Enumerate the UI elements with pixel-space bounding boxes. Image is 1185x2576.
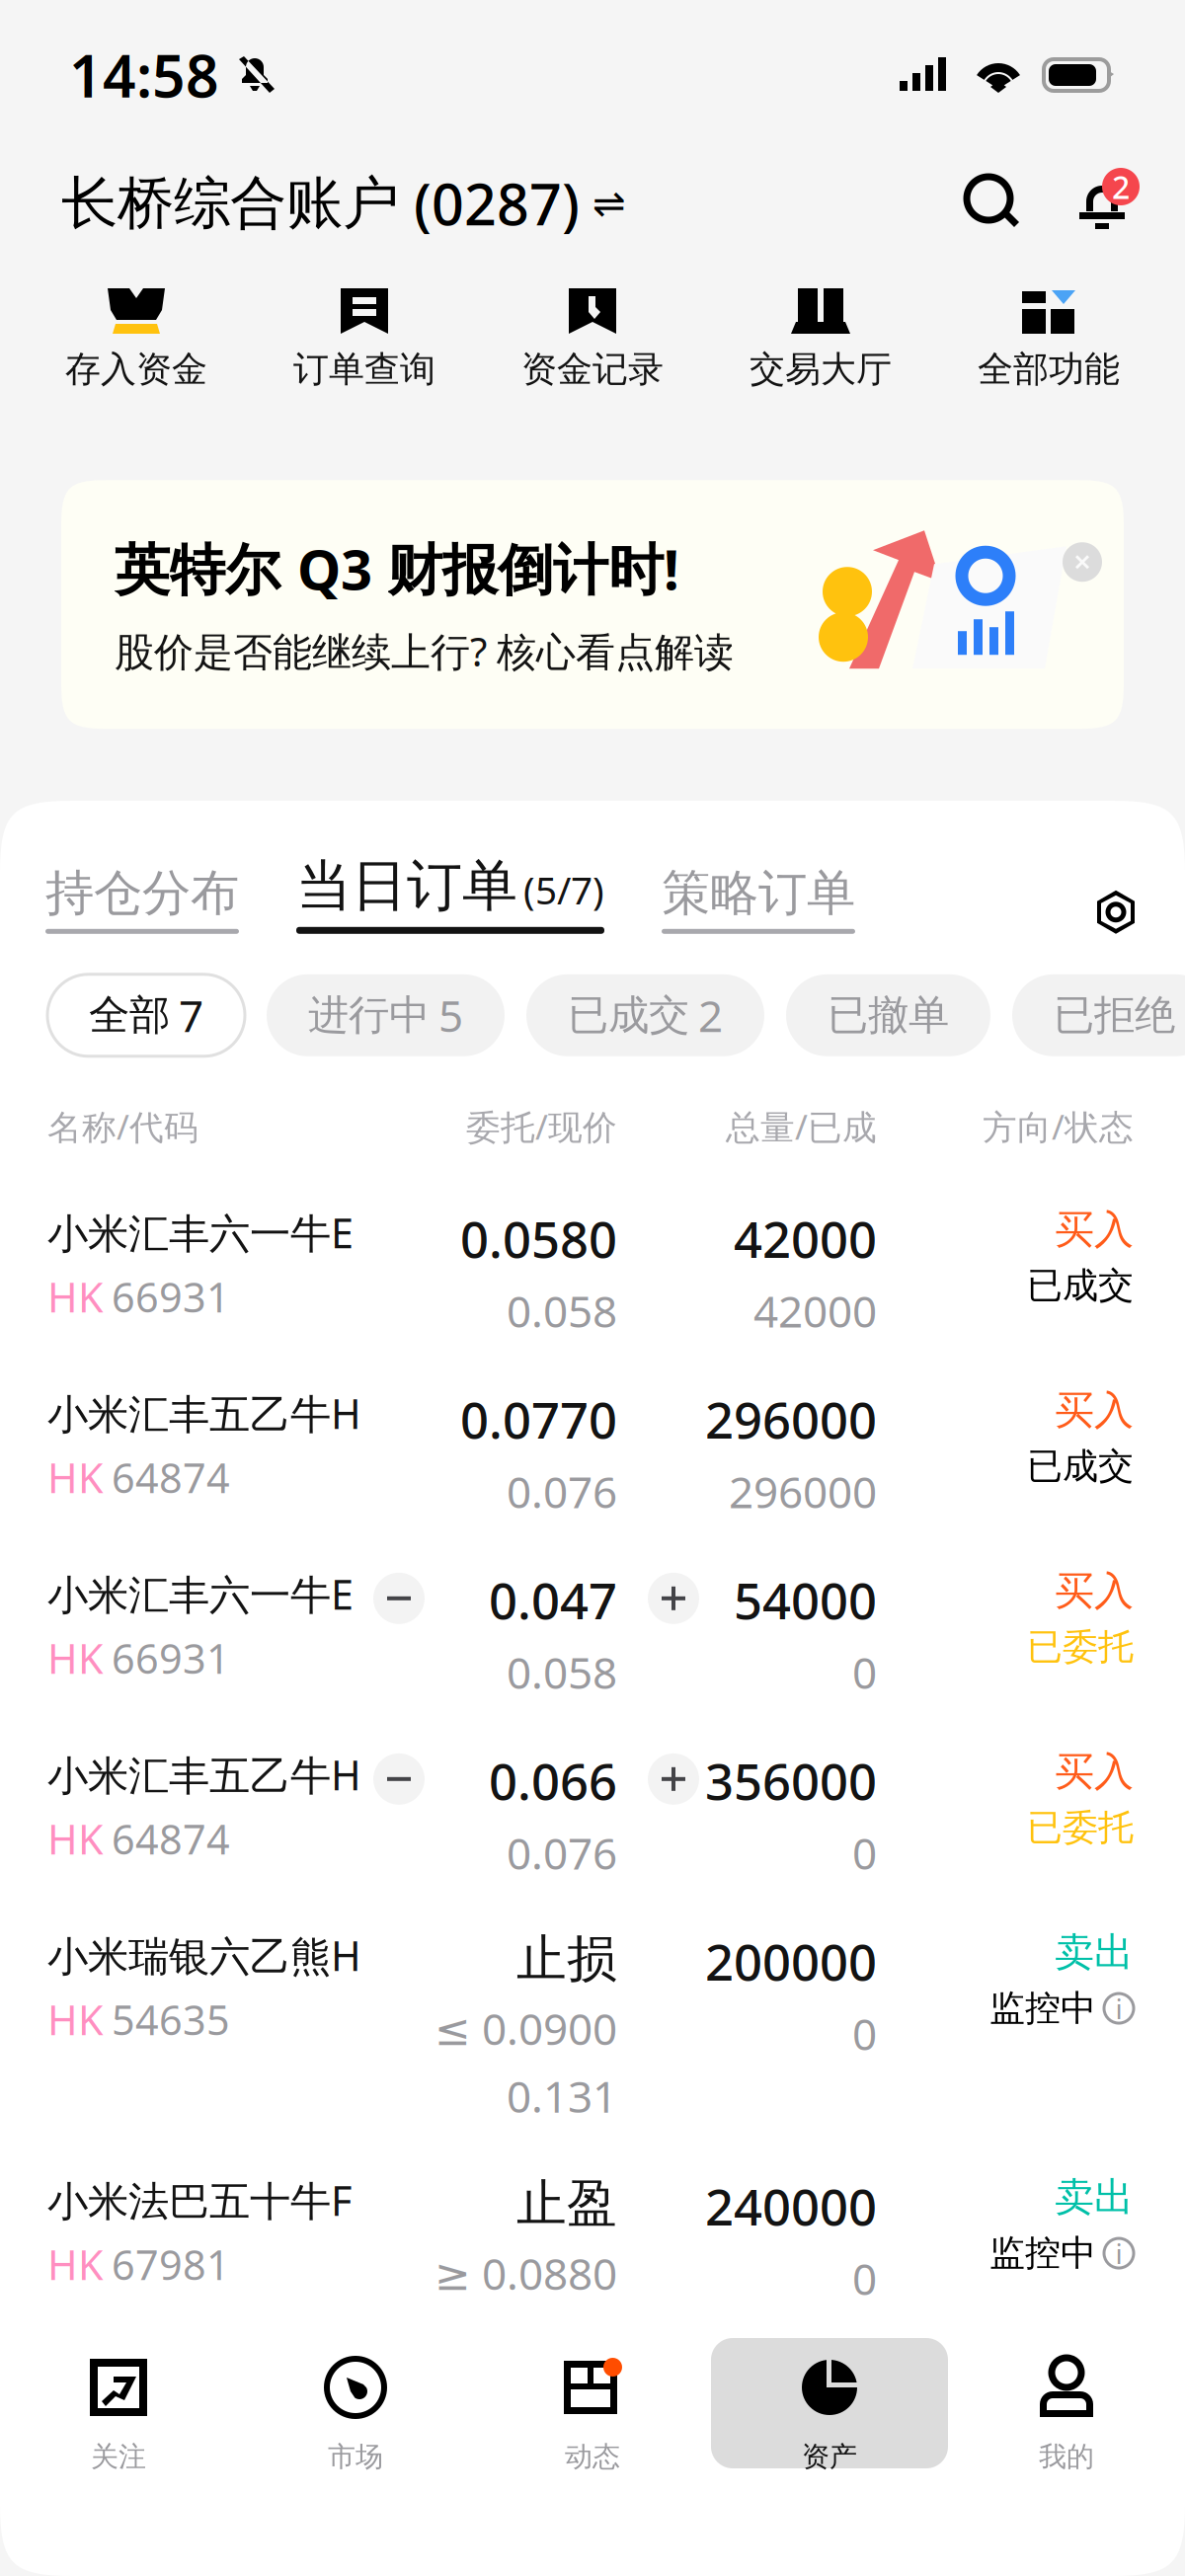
- button[interactable]: 小米汇丰六一牛E: [0, 1149, 1185, 1330]
- staticText: 存入资金: [65, 348, 207, 391]
- staticText: 小米汇丰六一牛E: [47, 1567, 354, 1621]
- staticText: (5/7): [523, 864, 604, 915]
- staticText: 0.076: [507, 1824, 617, 1881]
- staticText: HK: [47, 1269, 104, 1324]
- staticText: 订单查询: [293, 348, 435, 391]
- button[interactable]: 订单查询: [250, 288, 478, 391]
- button[interactable]: Search: [966, 176, 1021, 231]
- button[interactable]: 长桥综合账户: [61, 166, 626, 241]
- button[interactable]: 资金记录: [478, 288, 707, 391]
- staticText: 0.0770: [460, 1386, 617, 1452]
- staticText: 0.131: [507, 2067, 617, 2125]
- staticText: 已成交: [568, 990, 689, 1040]
- button[interactable]: Settings: [1096, 890, 1136, 934]
- button[interactable]: Decrease: [373, 1753, 425, 1805]
- staticText: 0.010: [507, 2312, 617, 2370]
- staticText: 股价是否能继续上行? 核心看点解读: [115, 625, 734, 677]
- staticText: 持仓分布: [45, 863, 239, 923]
- staticText: 名称/代码: [47, 1104, 198, 1149]
- staticText: 64874: [112, 1811, 230, 1866]
- button[interactable]: 持仓分布: [45, 863, 239, 934]
- staticText: 卖出: [1055, 1928, 1134, 1977]
- button[interactable]: 存入资金: [22, 288, 250, 391]
- button[interactable]: Decrease: [373, 1573, 425, 1624]
- staticText: 200000: [705, 1928, 877, 1995]
- staticText: 委托/现价: [466, 1104, 617, 1149]
- staticText: 买入: [1055, 1205, 1134, 1254]
- staticText: 0: [852, 1643, 877, 1701]
- staticText: 42000: [734, 1205, 877, 1272]
- staticText: 监控中: [989, 2231, 1096, 2275]
- button[interactable]: 交易大厅: [707, 288, 935, 391]
- staticText: 买入: [1055, 1567, 1134, 1615]
- button[interactable]: 当日订单: [296, 852, 604, 934]
- staticText: HK: [47, 1992, 104, 2046]
- staticText: ⇌: [580, 181, 626, 226]
- staticText: 总量/已成: [726, 1104, 877, 1149]
- button[interactable]: Notifications: [1076, 176, 1128, 231]
- staticText: 方向/状态: [983, 1104, 1134, 1149]
- button[interactable]: 市场: [237, 2338, 474, 2468]
- staticText: 64874: [112, 1450, 230, 1504]
- staticText: 小米法巴五十牛F: [47, 2173, 352, 2227]
- button[interactable]: 已拒绝: [1012, 974, 1185, 1056]
- button[interactable]: 动态: [474, 2338, 711, 2468]
- staticText: 296000: [705, 1386, 877, 1452]
- button[interactable]: 我的: [948, 2338, 1185, 2468]
- staticText: 进行中: [308, 990, 430, 1040]
- button[interactable]: 小米汇丰六一牛E: [0, 1510, 1185, 1691]
- staticText: 42000: [753, 1282, 877, 1339]
- staticText: i: [1115, 2235, 1122, 2272]
- staticText: HK: [47, 1631, 104, 1685]
- button[interactable]: 全部功能: [935, 288, 1163, 391]
- button[interactable]: 关注: [0, 2338, 237, 2468]
- staticText: i: [1115, 1990, 1122, 2027]
- staticText: 买入: [1055, 1386, 1134, 1435]
- staticText: 0: [852, 2004, 877, 2062]
- staticText: 66931: [112, 1631, 230, 1685]
- button[interactable]: 小米汇丰五乙牛H: [0, 1330, 1185, 1510]
- button[interactable]: 小米汇丰五乙牛H: [0, 1691, 1185, 1872]
- staticText: HK: [47, 1811, 104, 1866]
- button[interactable]: 资产: [711, 2338, 948, 2468]
- button[interactable]: 英特尔 Q3 财报倒计时!: [61, 480, 1124, 729]
- staticText: 长桥综合账户: [61, 169, 399, 238]
- staticText: 0.076: [507, 1462, 617, 1520]
- staticText: 策略订单: [662, 863, 855, 923]
- staticText: 0.058: [507, 1282, 617, 1339]
- staticText: 356000: [705, 1747, 877, 1814]
- button[interactable]: 策略订单: [662, 863, 855, 934]
- staticText: 买入: [1055, 1747, 1134, 1796]
- button[interactable]: 已成交: [526, 974, 764, 1056]
- staticText: 监控中: [989, 1987, 1096, 2030]
- button[interactable]: 进行中: [267, 974, 505, 1056]
- staticText: 卖出: [1055, 2173, 1134, 2221]
- staticText: HK: [47, 2237, 104, 2291]
- staticText: 54635: [112, 1992, 230, 2046]
- staticText: 交易大厅: [750, 348, 892, 391]
- staticText: 小米汇丰五乙牛H: [47, 1386, 361, 1440]
- staticText: 14:58: [69, 37, 219, 113]
- staticText: 已成交: [1027, 1264, 1134, 1307]
- button[interactable]: Increase: [648, 1753, 699, 1805]
- button[interactable]: Increase: [648, 1573, 699, 1624]
- staticText: 全部功能: [978, 348, 1120, 391]
- staticText: ≤ 0.0900: [434, 1999, 617, 2057]
- staticText: 当日订单: [296, 852, 517, 920]
- staticText: 已委托: [1027, 1806, 1134, 1850]
- staticText: 已委托: [1027, 1625, 1134, 1669]
- staticText: 小米汇丰六一牛E: [47, 1205, 354, 1260]
- staticText: 296000: [729, 1462, 877, 1520]
- staticText: 全部: [89, 990, 170, 1040]
- staticText: 止损: [516, 1928, 617, 1990]
- staticText: 小米汇丰五乙牛H: [47, 1747, 361, 1802]
- staticText: 动态: [565, 2440, 620, 2474]
- button[interactable]: 全部: [47, 974, 245, 1056]
- staticText: 0: [852, 1824, 877, 1881]
- button[interactable]: 小米瑞银六乙熊H: [0, 1872, 1185, 2117]
- button[interactable]: 小米法巴五十牛F: [0, 2117, 1185, 2362]
- staticText: 2: [1112, 166, 1130, 208]
- button[interactable]: 已撤单: [786, 974, 990, 1056]
- staticText: 0: [852, 2249, 877, 2307]
- staticText: 英特尔 Q3 财报倒计时!: [115, 532, 679, 605]
